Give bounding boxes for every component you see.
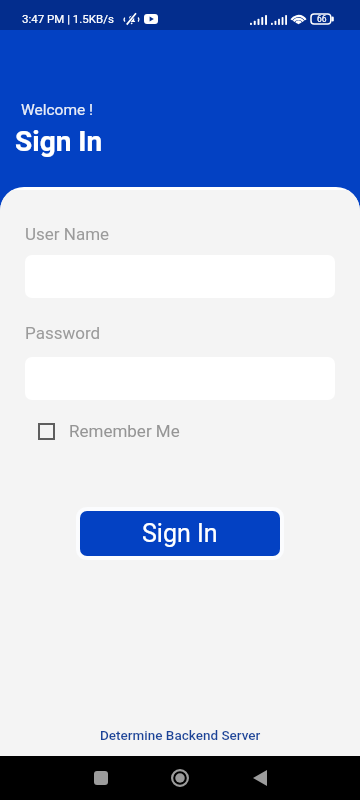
button[interactable]: Home — [158, 756, 202, 800]
staticText: Sign In — [142, 519, 218, 548]
staticText: User Name — [25, 224, 110, 244]
button[interactable]: Back — [238, 756, 282, 800]
button[interactable]: Sign In — [80, 511, 280, 556]
staticText: Remember Me — [69, 421, 180, 441]
staticText: 3:47 PM | 1.5KB/s — [22, 12, 114, 25]
staticText: Password — [25, 323, 101, 343]
button[interactable]: Recent apps — [79, 756, 123, 800]
staticText: Welcome ! — [21, 101, 94, 119]
staticText: Sign In — [15, 125, 103, 158]
button[interactable]: Determine Backend Server — [100, 727, 261, 743]
staticText: 66 — [317, 14, 327, 24]
button[interactable]: Remember Me — [38, 421, 180, 441]
